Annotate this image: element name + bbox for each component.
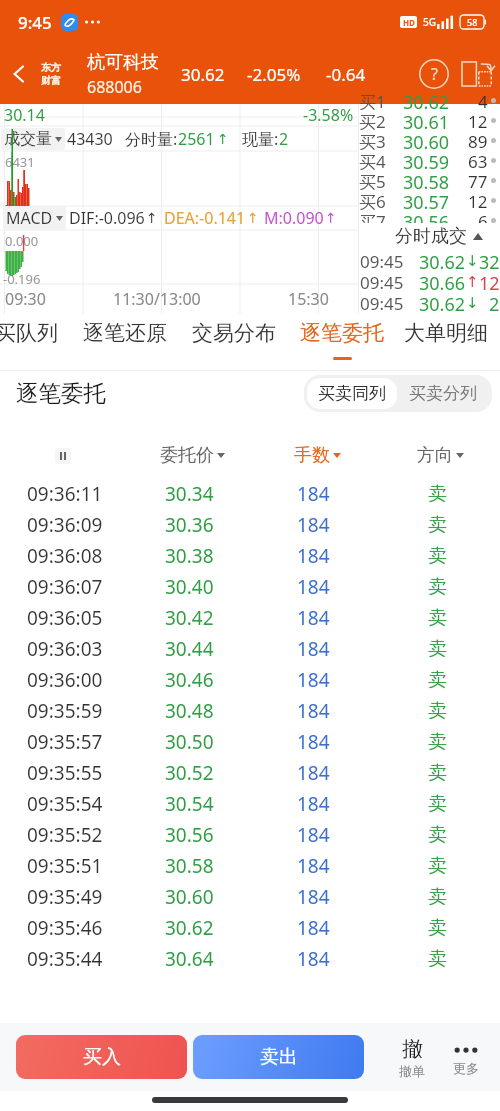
button[interactable]: 09:45 (359, 271, 500, 292)
button[interactable]: 09:36:07 (0, 571, 500, 602)
button[interactable]: 买1 (359, 90, 500, 110)
button[interactable]: 手数 (272, 433, 362, 478)
button[interactable]: Help (414, 54, 454, 94)
button[interactable]: 09:35:49 (0, 881, 500, 912)
staticText: 买6 (359, 190, 397, 210)
staticText: 09:36:03 (27, 636, 103, 662)
staticText: 6431 (5, 153, 35, 171)
staticText: 卖 (428, 513, 447, 537)
button[interactable]: 卖出 (193, 1035, 364, 1079)
button[interactable]: 大单明细 (391, 314, 500, 352)
button[interactable]: 买2 (359, 110, 500, 130)
button[interactable]: 撤 (386, 1036, 438, 1079)
staticText: 5G (423, 15, 436, 29)
staticText: 卖 (428, 575, 447, 599)
button[interactable]: 买队列 (0, 314, 81, 352)
staticText: ↑ (466, 273, 479, 290)
button[interactable]: 09:35:55 (0, 757, 500, 788)
button[interactable]: 逐笔委托 (287, 314, 397, 352)
staticText: 30.60 (165, 884, 214, 910)
staticText: 30.46 (165, 667, 214, 693)
staticText: 184 (297, 946, 330, 972)
staticText: 6 (478, 210, 488, 230)
staticText: 09:35:57 (27, 729, 103, 755)
button[interactable]: 买卖分列 (397, 378, 489, 409)
button[interactable]: Back (0, 44, 38, 104)
button[interactable]: 逐笔还原 (70, 314, 180, 352)
staticText: ↑ (325, 210, 337, 226)
button[interactable]: 09:35:59 (0, 695, 500, 726)
staticText: ↓ (466, 294, 479, 311)
button[interactable]: 09:45 (359, 292, 500, 313)
staticText: 买队列 (0, 320, 58, 346)
button[interactable]: 方向 (395, 433, 485, 478)
staticText: 09:35:51 (27, 853, 103, 879)
staticText: 30.62 (419, 250, 466, 271)
staticText: ↓ (466, 252, 479, 269)
staticText: 184 (297, 822, 330, 848)
button[interactable]: 09:36:00 (0, 664, 500, 695)
staticText: 184 (297, 605, 330, 631)
button[interactable]: 09:35:57 (0, 726, 500, 757)
staticText: 688006 (87, 76, 142, 98)
button[interactable]: 09:36:03 (0, 633, 500, 664)
button[interactable]: Switch layout (460, 57, 494, 91)
button[interactable]: 分时成交 (395, 225, 483, 248)
button[interactable]: 09:35:51 (0, 850, 500, 881)
staticText: 184 (297, 791, 330, 817)
staticText: 184 (297, 698, 330, 724)
staticText: ↑ (146, 210, 158, 226)
staticText: 撤单 (399, 1063, 425, 1079)
staticText: 卖 (428, 606, 447, 630)
staticText: 15:30 (288, 288, 329, 308)
staticText: -0.196 (3, 270, 41, 288)
staticText: 0.000 (5, 232, 39, 250)
staticText: 12 (468, 190, 488, 210)
button[interactable]: MACD (6, 207, 63, 229)
button[interactable]: 09:36:05 (0, 602, 500, 633)
button[interactable]: 更多 (438, 1038, 494, 1076)
staticText: -3.58% (303, 104, 354, 126)
staticText: 30.58 (397, 170, 455, 190)
button[interactable]: 09:45 (359, 250, 500, 271)
staticText: 184 (297, 760, 330, 786)
button[interactable]: 买6 (359, 190, 500, 210)
staticText: 77 (468, 170, 488, 190)
button[interactable]: 09:35:54 (0, 788, 500, 819)
staticText: M:0.090 (264, 207, 324, 229)
staticText: 分时量: (125, 128, 178, 150)
button[interactable]: 09:36:11 (0, 478, 500, 509)
staticText: 30.61 (397, 110, 455, 130)
staticText: 09:35:49 (27, 884, 103, 910)
button[interactable]: 委托价 (147, 433, 237, 478)
staticText: 东方 (41, 61, 61, 74)
staticText: 30.50 (165, 729, 214, 755)
staticText: 09:36:05 (27, 605, 103, 631)
staticText: 卖 (428, 668, 447, 692)
staticText: 09:35:59 (27, 698, 103, 724)
button[interactable]: 09:36:09 (0, 509, 500, 540)
staticText: 卖 (428, 947, 447, 971)
button[interactable]: 成交量 (4, 129, 62, 149)
button[interactable]: 买卖同列 (307, 378, 397, 409)
button[interactable]: 买5 (359, 170, 500, 190)
staticText: 30.52 (165, 760, 214, 786)
button[interactable]: 买3 (359, 130, 500, 150)
button[interactable]: 买入 (16, 1035, 187, 1079)
button[interactable]: 09:35:44 (0, 943, 500, 974)
staticText: 买2 (359, 110, 397, 130)
staticText: 30.58 (165, 853, 214, 879)
staticText: 卖 (428, 916, 447, 940)
staticText: 卖 (428, 761, 447, 785)
button[interactable]: 买4 (359, 150, 500, 170)
button[interactable]: 买7 (359, 210, 500, 230)
button[interactable]: 09:35:52 (0, 819, 500, 850)
button[interactable]: Pause (55, 448, 71, 464)
staticText: 卖 (428, 885, 447, 909)
staticText: 2 (489, 292, 500, 313)
button[interactable]: 09:35:46 (0, 912, 500, 943)
button[interactable]: 交易分布 (179, 314, 289, 352)
button[interactable]: 09:36:08 (0, 540, 500, 571)
staticText: 184 (297, 512, 330, 538)
staticText: 30.62 (165, 915, 214, 941)
